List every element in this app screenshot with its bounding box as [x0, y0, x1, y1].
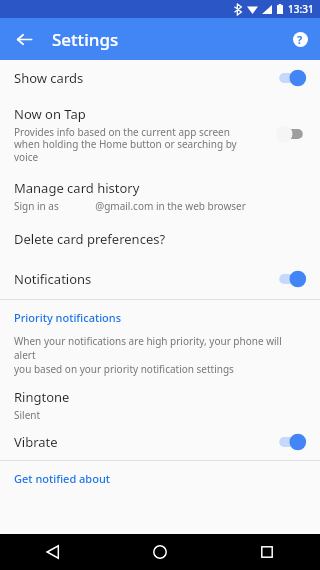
button[interactable]: Notifications	[0, 259, 320, 299]
staticText: Now on Tap	[14, 105, 86, 123]
button[interactable]: Get notified about	[0, 461, 320, 495]
staticText: Settings	[52, 28, 119, 51]
staticText: ?	[297, 32, 303, 47]
button[interactable]: Priority notifications	[0, 300, 320, 334]
staticText: Ringtone	[14, 388, 70, 406]
button[interactable]: Ringtone	[0, 386, 320, 424]
button[interactable]: Home	[143, 535, 177, 569]
staticText: Notifications	[14, 270, 92, 288]
staticText: Priority notifications	[14, 310, 122, 325]
staticText: Sign in as @gmail.com in the web browser	[14, 199, 246, 213]
button[interactable]: Now on Tap	[0, 96, 320, 172]
staticText: Manage card history	[14, 179, 140, 197]
button[interactable]: Show cards	[0, 60, 320, 96]
button[interactable]: Delete card preferences?	[0, 219, 320, 259]
button[interactable]: Back	[36, 535, 70, 569]
staticText: Provides info based on the current app s…	[14, 125, 237, 164]
staticText: Show cards	[14, 69, 84, 87]
staticText: When your notifications are high priorit…	[14, 334, 300, 376]
staticText: Vibrate	[14, 433, 58, 451]
staticText: Get notified about	[14, 471, 111, 486]
button[interactable]: Vibrate	[0, 424, 320, 460]
staticText: 13:31	[288, 2, 314, 16]
button[interactable]: Help	[287, 26, 313, 52]
button[interactable]: Manage card history	[0, 172, 320, 219]
staticText: Delete card preferences?	[14, 230, 166, 248]
staticText: Silent	[14, 408, 41, 422]
button[interactable]: Back	[10, 25, 38, 53]
button[interactable]: Recent apps	[250, 535, 284, 569]
